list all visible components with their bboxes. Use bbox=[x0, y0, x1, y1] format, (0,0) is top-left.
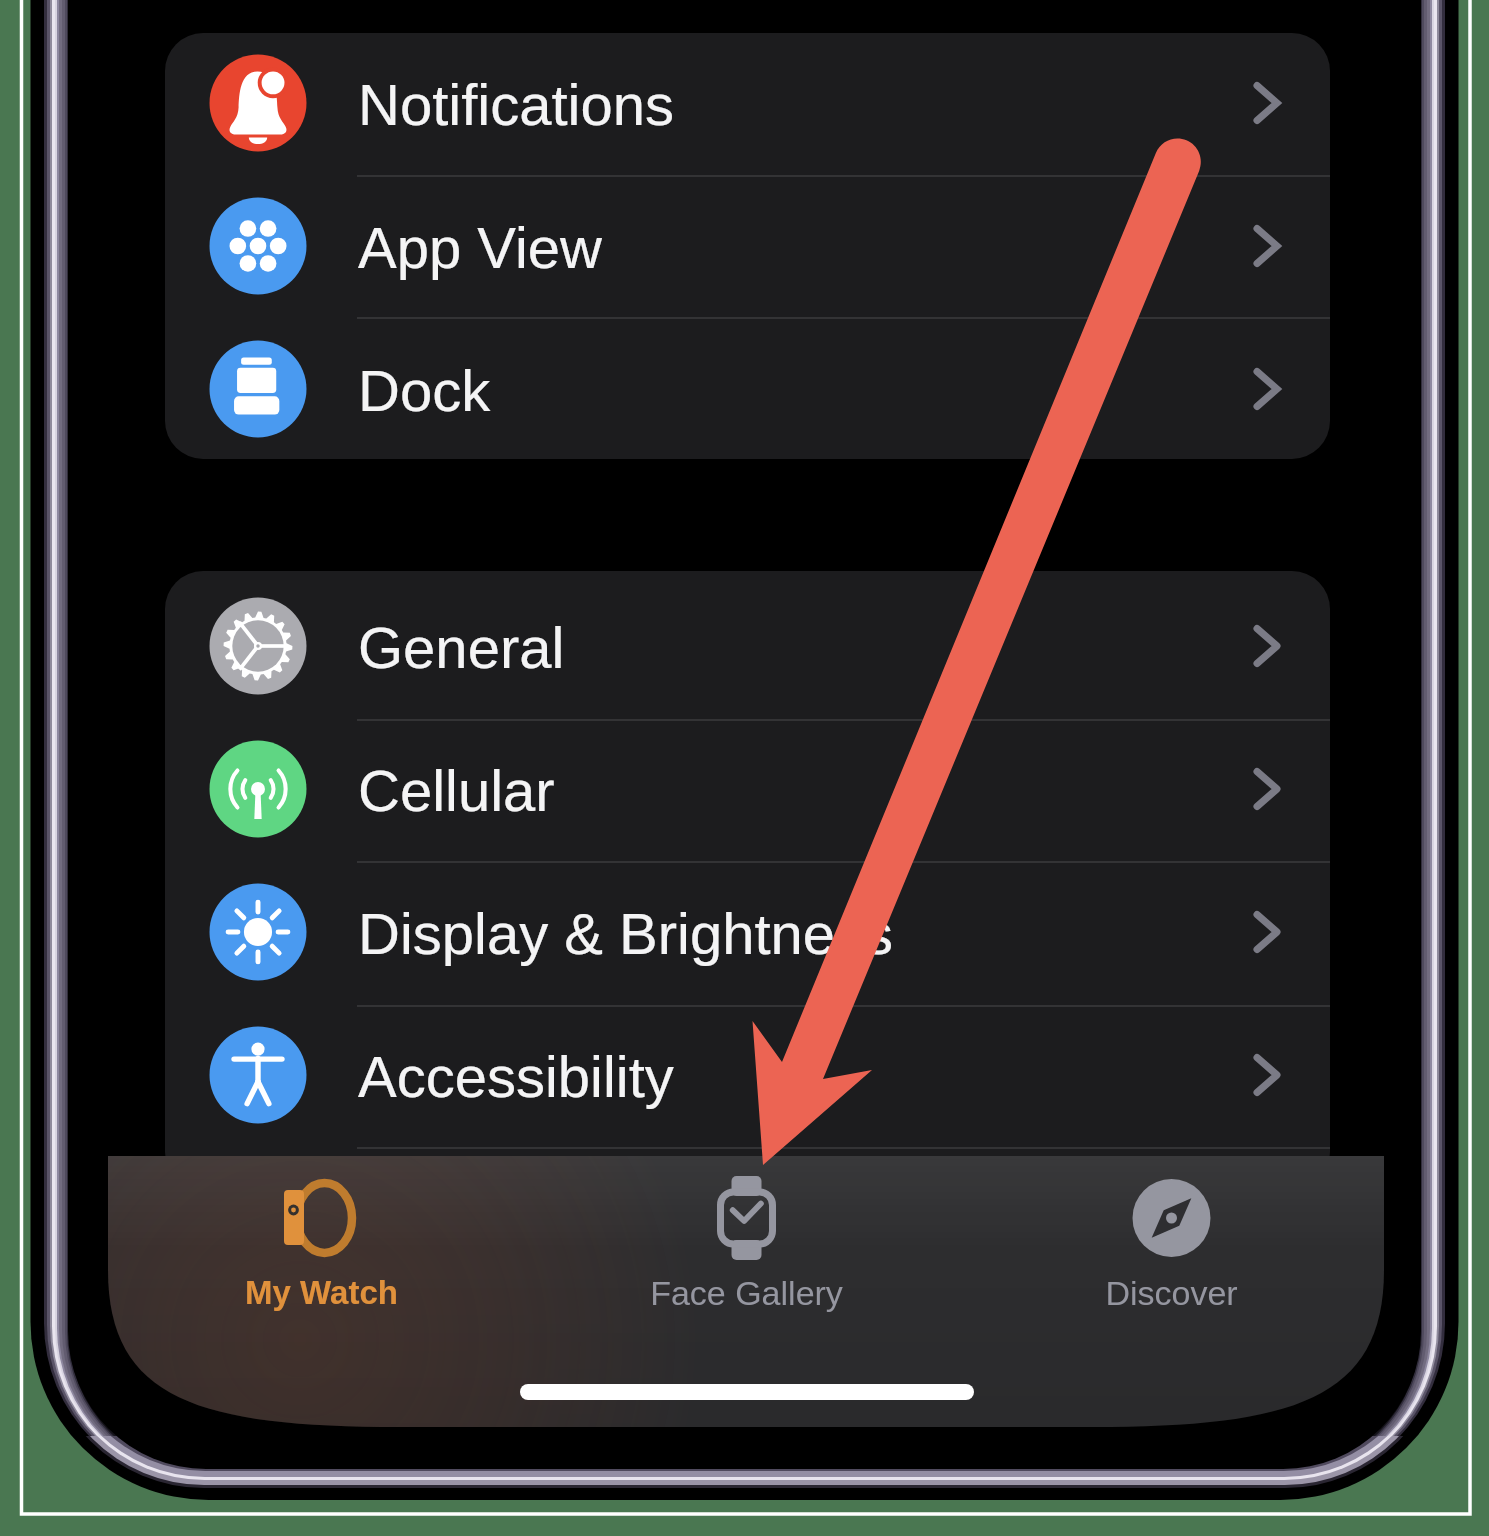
staticText: Display & Brightness bbox=[358, 901, 894, 966]
staticText: Accessibility bbox=[358, 1044, 674, 1109]
button[interactable]: Dock bbox=[165, 318, 1330, 460]
button[interactable]: General bbox=[165, 575, 1330, 717]
button[interactable]: Discover bbox=[959, 1156, 1384, 1427]
staticText: Cellular bbox=[358, 758, 555, 823]
button[interactable]: Accessibility bbox=[165, 1004, 1330, 1146]
button[interactable]: Notifications bbox=[165, 32, 1330, 174]
staticText: Notifications bbox=[358, 72, 674, 137]
staticText: Dock bbox=[358, 358, 491, 423]
button[interactable]: Display & Brightness bbox=[165, 861, 1330, 1003]
staticText: General bbox=[358, 615, 565, 680]
staticText: App View bbox=[358, 215, 602, 280]
button[interactable]: Face Gallery bbox=[534, 1156, 959, 1427]
button[interactable]: My Watch bbox=[108, 1156, 534, 1427]
button[interactable]: App View bbox=[165, 175, 1330, 317]
button[interactable]: Cellular bbox=[165, 718, 1330, 860]
staticText: Face Gallery bbox=[650, 1274, 843, 1312]
staticText: Discover bbox=[1105, 1274, 1238, 1312]
staticText: My Watch bbox=[245, 1274, 398, 1311]
